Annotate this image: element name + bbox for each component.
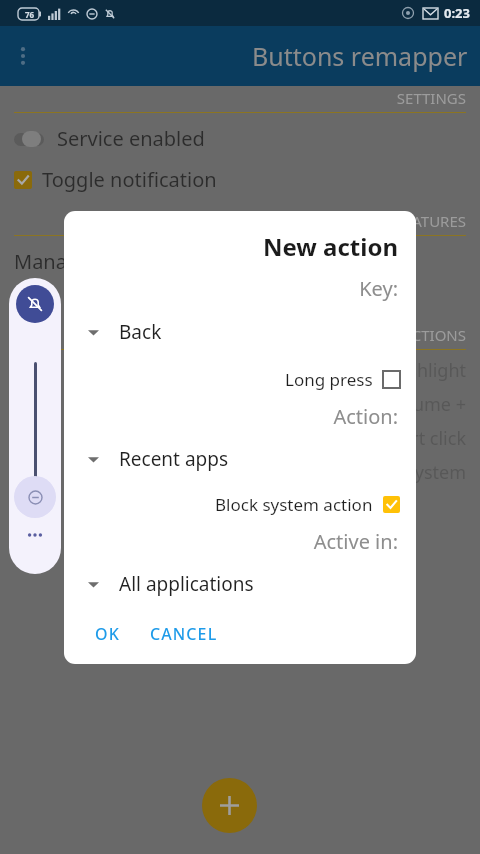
button[interactable]: Service enabled (0, 125, 480, 152)
staticText: New action (64, 230, 398, 263)
button[interactable]: OK (90, 618, 125, 650)
button[interactable]: Volume level (14, 476, 56, 518)
button[interactable]: Mute (16, 285, 54, 323)
staticText: Block system action (215, 493, 373, 516)
staticText: Recent apps (119, 446, 229, 472)
button[interactable]: More (18, 518, 52, 552)
button[interactable]: Block system action (64, 491, 416, 518)
staticText: Manage (14, 248, 91, 275)
staticText: Long press (285, 368, 373, 391)
staticText: Service enabled (57, 125, 205, 152)
button[interactable]: CANCEL (145, 618, 223, 650)
staticText: CANCEL (150, 623, 218, 645)
button[interactable]: Add action (202, 778, 257, 833)
staticText: Key: (64, 275, 398, 302)
staticText: Block system (0, 460, 466, 485)
staticText: FEATURES (0, 211, 466, 231)
staticText: Toggle notification (42, 166, 217, 193)
staticText: 76 (25, 9, 35, 20)
staticText: All applications (119, 571, 254, 597)
button[interactable]: Back (64, 316, 416, 348)
staticText: OK (95, 623, 120, 645)
staticText: Short click (0, 426, 466, 451)
staticText: Volume + (0, 392, 466, 417)
staticText: Active in: (64, 528, 398, 555)
staticText: 0:23 (444, 4, 470, 22)
staticText: Flashlight (0, 358, 466, 383)
staticText: Action: (64, 403, 398, 430)
button[interactable]: All applications (64, 568, 416, 600)
button[interactable]: Recent apps (64, 443, 416, 475)
staticText: Buttons remapper (252, 39, 468, 73)
staticText: SETTINGS (0, 88, 466, 108)
staticText: Back (119, 319, 162, 345)
button[interactable]: Toggle notification (0, 166, 480, 193)
staticText: ACTIONS (0, 325, 466, 345)
button[interactable]: More options (0, 33, 46, 79)
button[interactable]: Long press (64, 366, 416, 393)
